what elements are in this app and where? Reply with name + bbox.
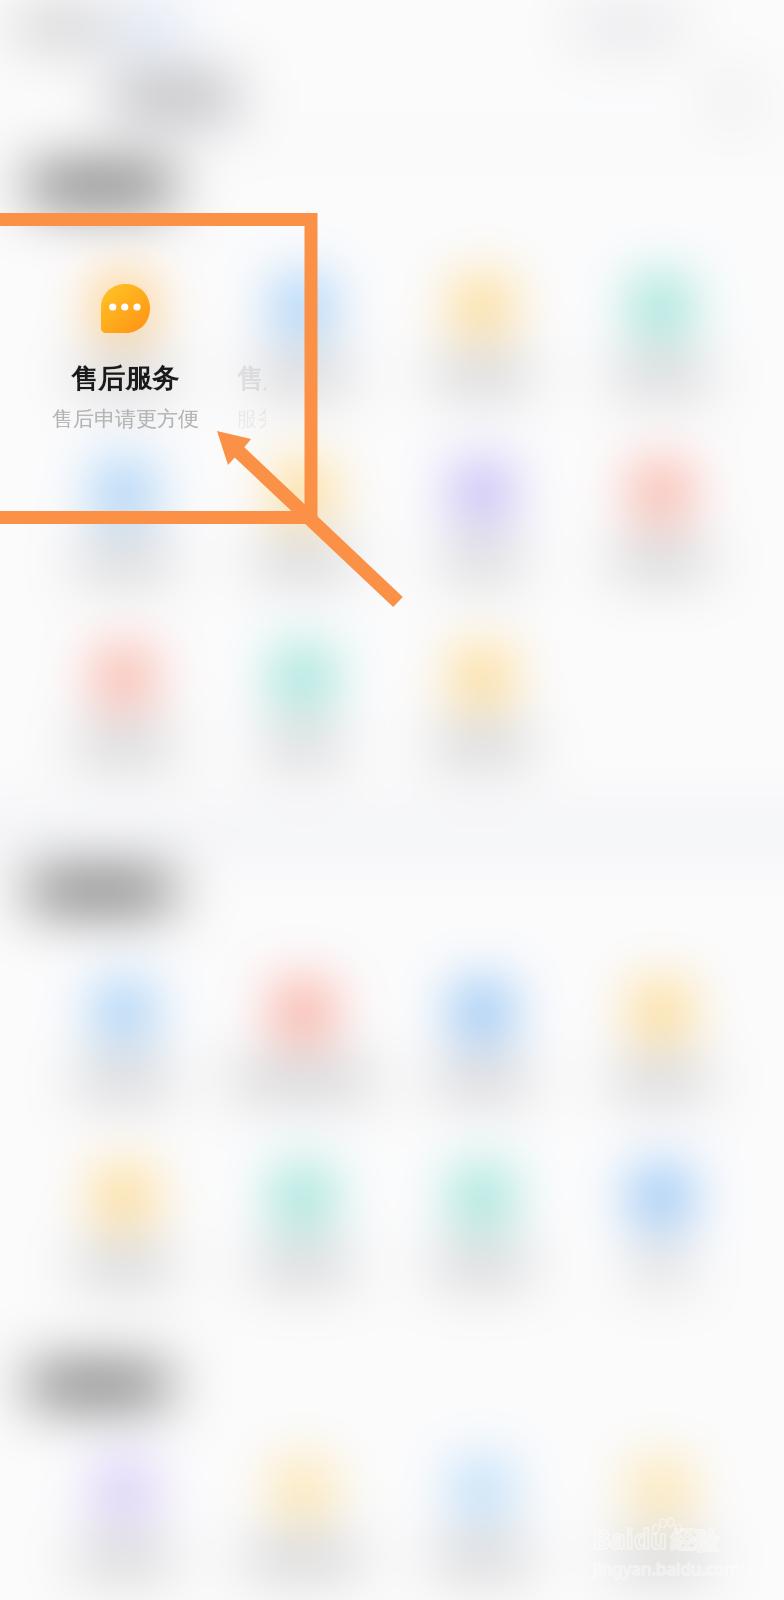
button[interactable] [213, 1114, 392, 1299]
button[interactable] [571, 224, 750, 409]
button[interactable] [34, 929, 213, 1114]
staticText: 售后申请更方便 [52, 406, 199, 432]
button[interactable]: After-sales service [36, 284, 214, 432]
staticText: 售后服务 [71, 362, 179, 396]
staticText: jingyan.baidu.com [593, 1557, 741, 1580]
other: After-sales service [101, 284, 150, 333]
button[interactable] [213, 929, 392, 1114]
button[interactable] [392, 594, 571, 779]
button[interactable] [571, 1114, 750, 1299]
button[interactable] [392, 409, 571, 594]
button[interactable] [392, 1407, 571, 1592]
button[interactable] [392, 1114, 571, 1299]
button[interactable] [34, 409, 213, 594]
staticText: Baidu [593, 1521, 667, 1556]
button[interactable] [392, 224, 571, 409]
button[interactable] [571, 409, 750, 594]
staticText: 服务更方便 [238, 406, 266, 432]
button[interactable] [213, 594, 392, 779]
staticText: 售后服务 [238, 362, 266, 396]
button[interactable] [392, 929, 571, 1114]
button[interactable] [571, 929, 750, 1114]
button[interactable] [34, 1114, 213, 1299]
button[interactable] [213, 224, 392, 409]
button[interactable] [213, 409, 392, 594]
button[interactable] [213, 1407, 392, 1592]
button[interactable] [34, 224, 213, 409]
staticText: 经验 [671, 1526, 719, 1556]
button[interactable] [571, 1407, 750, 1592]
button[interactable] [34, 594, 213, 779]
button[interactable] [34, 1407, 213, 1592]
